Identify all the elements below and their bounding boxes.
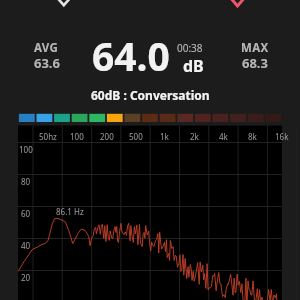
staticText: 4k <box>219 131 228 142</box>
button[interactable]: AVG <box>18 40 75 74</box>
staticText: 50hz <box>39 131 57 142</box>
staticText: dB <box>183 55 204 77</box>
button[interactable]: MAX <box>226 40 283 74</box>
staticText: 60 <box>21 208 31 219</box>
staticText: 64.0 <box>92 29 170 82</box>
staticText: 100 <box>19 144 33 155</box>
other: Level markers <box>0 0 300 300</box>
staticText: 2k <box>190 131 199 142</box>
staticText: 20 <box>21 272 31 283</box>
staticText: 68.3 <box>242 54 268 72</box>
staticText: 200 <box>100 131 114 142</box>
staticText: AVG <box>34 40 59 56</box>
staticText: 16k <box>275 131 289 142</box>
staticText: 86.1 Hz <box>56 206 84 217</box>
staticText: 1k <box>160 131 169 142</box>
staticText: 00:38 <box>177 41 203 55</box>
staticText: 60dB : Conversation <box>91 87 210 103</box>
staticText: 40 <box>21 240 31 251</box>
staticText: 8k <box>248 131 257 142</box>
staticText: 500 <box>129 131 143 142</box>
staticText: 63.6 <box>34 54 60 72</box>
button[interactable]: 64.0 <box>92 29 170 82</box>
staticText: 100 <box>70 131 84 142</box>
staticText: MAX <box>241 40 269 56</box>
staticText: 80 <box>21 176 31 187</box>
